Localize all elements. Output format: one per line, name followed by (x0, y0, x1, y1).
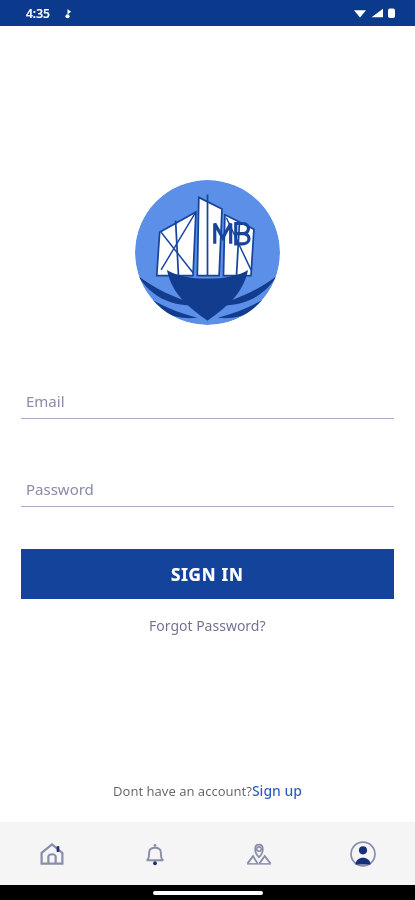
button[interactable]: Dont have an account?Sign up (105, 777, 310, 804)
staticText: Password (26, 479, 94, 499)
button[interactable]: SIGN IN (21, 549, 394, 599)
button[interactable]: Email (21, 391, 394, 419)
staticText: 4:35 (26, 5, 50, 21)
staticText: SIGN IN (171, 563, 244, 586)
button[interactable]: Map (207, 822, 311, 885)
staticText: Email (26, 391, 65, 411)
staticText: Dont have an account?Sign up (113, 781, 302, 800)
button[interactable]: Password (21, 479, 394, 507)
staticText: Forgot Password? (149, 616, 266, 635)
button[interactable]: Forgot Password? (139, 613, 276, 638)
button[interactable]: Notifications (103, 822, 207, 885)
button[interactable]: Profile (311, 822, 415, 885)
button[interactable]: Home (0, 822, 103, 885)
